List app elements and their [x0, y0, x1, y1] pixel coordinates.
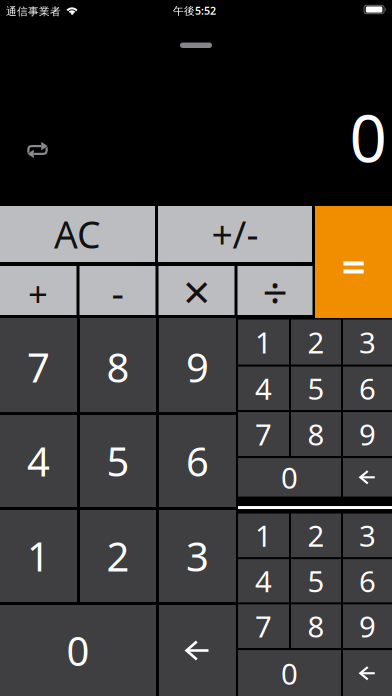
staticText: ÷	[262, 262, 287, 321]
button[interactable]: +/-	[158, 206, 312, 262]
staticText: 9	[186, 340, 209, 393]
staticText: -	[111, 267, 123, 318]
staticText: +/-	[211, 209, 258, 259]
button[interactable]: 6	[343, 367, 392, 410]
staticText: 午後5:52	[173, 3, 216, 18]
button[interactable]: 7	[238, 412, 289, 456]
button[interactable]: 9	[343, 412, 392, 456]
staticText: 4	[255, 561, 272, 600]
staticText: 2	[307, 516, 324, 555]
staticText: 3	[359, 323, 376, 362]
button[interactable]: +	[0, 266, 76, 315]
staticText: 4	[27, 434, 50, 487]
staticText: 0	[281, 458, 298, 497]
staticText: 1	[255, 516, 272, 555]
staticText: 1	[255, 323, 272, 362]
button[interactable]: 5	[291, 367, 341, 410]
button[interactable]: 8	[291, 604, 341, 648]
button[interactable]: 3	[343, 513, 392, 557]
staticText: 7	[27, 340, 50, 393]
button[interactable]: AC	[0, 206, 155, 262]
staticText: 4	[255, 369, 272, 408]
button[interactable]: ×	[158, 266, 234, 315]
button[interactable]: 2	[80, 510, 156, 602]
button[interactable]: =	[315, 206, 392, 318]
button[interactable]: 8	[291, 412, 341, 456]
button[interactable]: 2	[291, 513, 341, 557]
staticText: 7	[255, 607, 272, 646]
button[interactable]: 0	[238, 458, 341, 497]
button[interactable]: 6	[343, 559, 392, 602]
staticText: 6	[359, 369, 376, 408]
button[interactable]: 1	[0, 510, 77, 602]
staticText: 6	[359, 561, 376, 600]
staticText: 0	[349, 94, 386, 180]
staticText: 5	[307, 369, 324, 408]
staticText: 8	[307, 607, 324, 646]
button[interactable]	[159, 605, 236, 696]
staticText: 5	[106, 434, 129, 487]
button[interactable]: 4	[0, 415, 77, 507]
button[interactable]: 5	[80, 415, 156, 507]
button[interactable]: 8	[80, 318, 156, 412]
staticText: 通信事業者	[6, 5, 61, 18]
staticText: 3	[359, 516, 376, 555]
staticText: 0	[66, 624, 89, 677]
staticText: 3	[186, 529, 209, 582]
button[interactable]: 0	[238, 650, 341, 696]
button[interactable]: 1	[238, 320, 289, 365]
button[interactable]	[343, 650, 392, 696]
button[interactable]: 7	[0, 318, 77, 412]
button[interactable]: 6	[159, 415, 236, 507]
staticText: 0	[281, 654, 298, 693]
button[interactable]: 3	[343, 320, 392, 365]
button[interactable]: 3	[159, 510, 236, 602]
button[interactable]	[343, 458, 392, 497]
button[interactable]: 4	[238, 559, 289, 602]
button[interactable]: 0	[0, 605, 156, 696]
button[interactable]: 1	[238, 513, 289, 557]
button[interactable]	[22, 137, 52, 163]
button[interactable]: -	[79, 266, 155, 315]
staticText: AC	[54, 209, 101, 259]
staticText: 9	[359, 415, 376, 454]
staticText: 5	[307, 561, 324, 600]
staticText: 2	[307, 323, 324, 362]
staticText: 9	[359, 607, 376, 646]
staticText: 7	[255, 415, 272, 454]
staticText: 2	[106, 529, 129, 582]
staticText: ×	[183, 259, 210, 323]
staticText: =	[341, 238, 365, 294]
staticText: +	[28, 270, 48, 316]
staticText: 1	[27, 529, 50, 582]
button[interactable]: 9	[343, 604, 392, 648]
staticText: 6	[186, 434, 209, 487]
staticText: 8	[106, 340, 129, 393]
button[interactable]: 9	[159, 318, 236, 412]
button[interactable]: 4	[238, 367, 289, 410]
staticText: 8	[307, 415, 324, 454]
button[interactable]: 2	[291, 320, 341, 365]
button[interactable]: 7	[238, 604, 289, 648]
button[interactable]: ÷	[237, 266, 312, 315]
button[interactable]: 5	[291, 559, 341, 602]
